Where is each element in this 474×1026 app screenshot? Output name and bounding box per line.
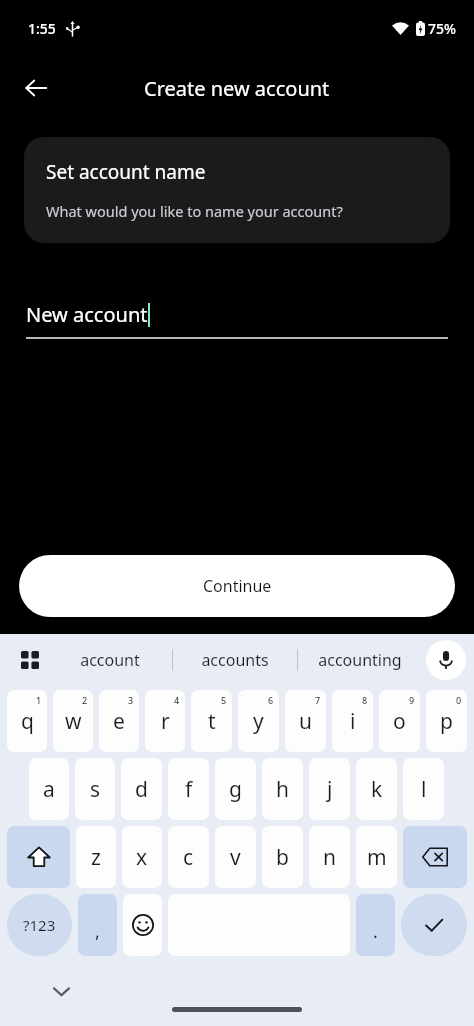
staticText: Set account name [46, 159, 206, 185]
button[interactable]: u [285, 690, 326, 752]
button[interactable]: e [99, 690, 139, 752]
staticText: 5 [221, 694, 227, 706]
staticText: s [90, 775, 101, 804]
staticText: 7 [315, 694, 321, 706]
button[interactable]: y [238, 690, 279, 752]
button[interactable]: l [403, 758, 444, 820]
staticText: Continue [203, 575, 272, 597]
button[interactable]: Period [356, 894, 395, 956]
button[interactable]: s [75, 758, 115, 820]
staticText: accounts [201, 649, 269, 671]
staticText: 3 [128, 694, 134, 706]
button[interactable]: a [29, 758, 69, 820]
button[interactable]: Backspace [403, 826, 467, 888]
button[interactable]: m [356, 826, 397, 888]
staticText: 1 [36, 694, 42, 706]
button[interactable]: Voice input [426, 640, 466, 680]
button[interactable]: g [215, 758, 256, 820]
staticText: l [421, 775, 427, 804]
staticText: o [393, 707, 406, 736]
staticText: g [229, 775, 242, 804]
staticText: p [440, 707, 453, 736]
staticText: accounting [318, 649, 402, 671]
button[interactable]: account [48, 649, 172, 671]
staticText: 4 [174, 694, 180, 706]
button[interactable]: o [379, 690, 420, 752]
staticText: account [80, 649, 140, 671]
button[interactable]: accounting [298, 649, 422, 671]
button[interactable]: c [168, 826, 209, 888]
button[interactable]: j [309, 758, 350, 820]
staticText: f [185, 775, 193, 804]
button[interactable]: Continue [19, 555, 455, 617]
staticText: t [208, 707, 216, 736]
staticText: . [373, 919, 378, 944]
button[interactable]: Set account name [24, 137, 450, 243]
staticText: w [65, 707, 82, 736]
staticText: 2 [82, 694, 88, 706]
staticText: k [371, 775, 383, 804]
button[interactable]: x [122, 826, 162, 888]
staticText: y [253, 707, 264, 736]
button[interactable]: k [356, 758, 397, 820]
button[interactable]: p [426, 690, 467, 752]
button[interactable]: f [168, 758, 209, 820]
button[interactable]: r [145, 690, 185, 752]
staticText: q [21, 707, 34, 736]
button[interactable]: Emoji [123, 894, 162, 956]
button[interactable]: accounts [173, 649, 297, 671]
button[interactable]: Hide keyboard [44, 974, 78, 1008]
button[interactable]: v [215, 826, 256, 888]
staticText: a [43, 775, 55, 804]
staticText: ?123 [23, 915, 56, 935]
button[interactable]: z [76, 826, 116, 888]
button[interactable]: b [262, 826, 303, 888]
staticText: b [276, 843, 289, 872]
button[interactable]: h [262, 758, 303, 820]
button[interactable]: n [309, 826, 350, 888]
staticText: c [183, 843, 194, 872]
staticText: x [136, 843, 148, 872]
button[interactable]: Toolbar [10, 640, 50, 680]
button[interactable]: q [7, 690, 47, 752]
staticText: d [135, 775, 148, 804]
staticText: New account [26, 301, 148, 328]
staticText: h [276, 775, 289, 804]
staticText: 8 [362, 694, 368, 706]
button[interactable]: t [191, 690, 232, 752]
staticText: 1:55 [28, 19, 56, 38]
staticText: v [230, 843, 241, 872]
staticText: 9 [409, 694, 415, 706]
button[interactable]: Comma [78, 894, 117, 956]
staticText: 75% [428, 19, 456, 38]
staticText: , [95, 919, 100, 944]
button[interactable]: Enter [401, 894, 467, 956]
button[interactable]: i [332, 690, 373, 752]
button[interactable]: w [53, 690, 93, 752]
staticText: n [323, 843, 336, 872]
staticText: r [161, 707, 170, 736]
staticText: 6 [268, 694, 274, 706]
staticText: i [350, 707, 356, 736]
staticText: j [327, 775, 333, 804]
button[interactable]: Shift [7, 826, 70, 888]
staticText: m [367, 843, 387, 872]
staticText: e [113, 707, 125, 736]
staticText: z [91, 843, 101, 872]
staticText: u [299, 707, 312, 736]
staticText: Create new account [144, 75, 330, 102]
staticText: 0 [456, 694, 462, 706]
button[interactable]: ?123 [7, 894, 72, 956]
staticText: What would you like to name your account… [46, 201, 343, 221]
button[interactable]: Back [12, 64, 60, 112]
button[interactable]: d [121, 758, 162, 820]
